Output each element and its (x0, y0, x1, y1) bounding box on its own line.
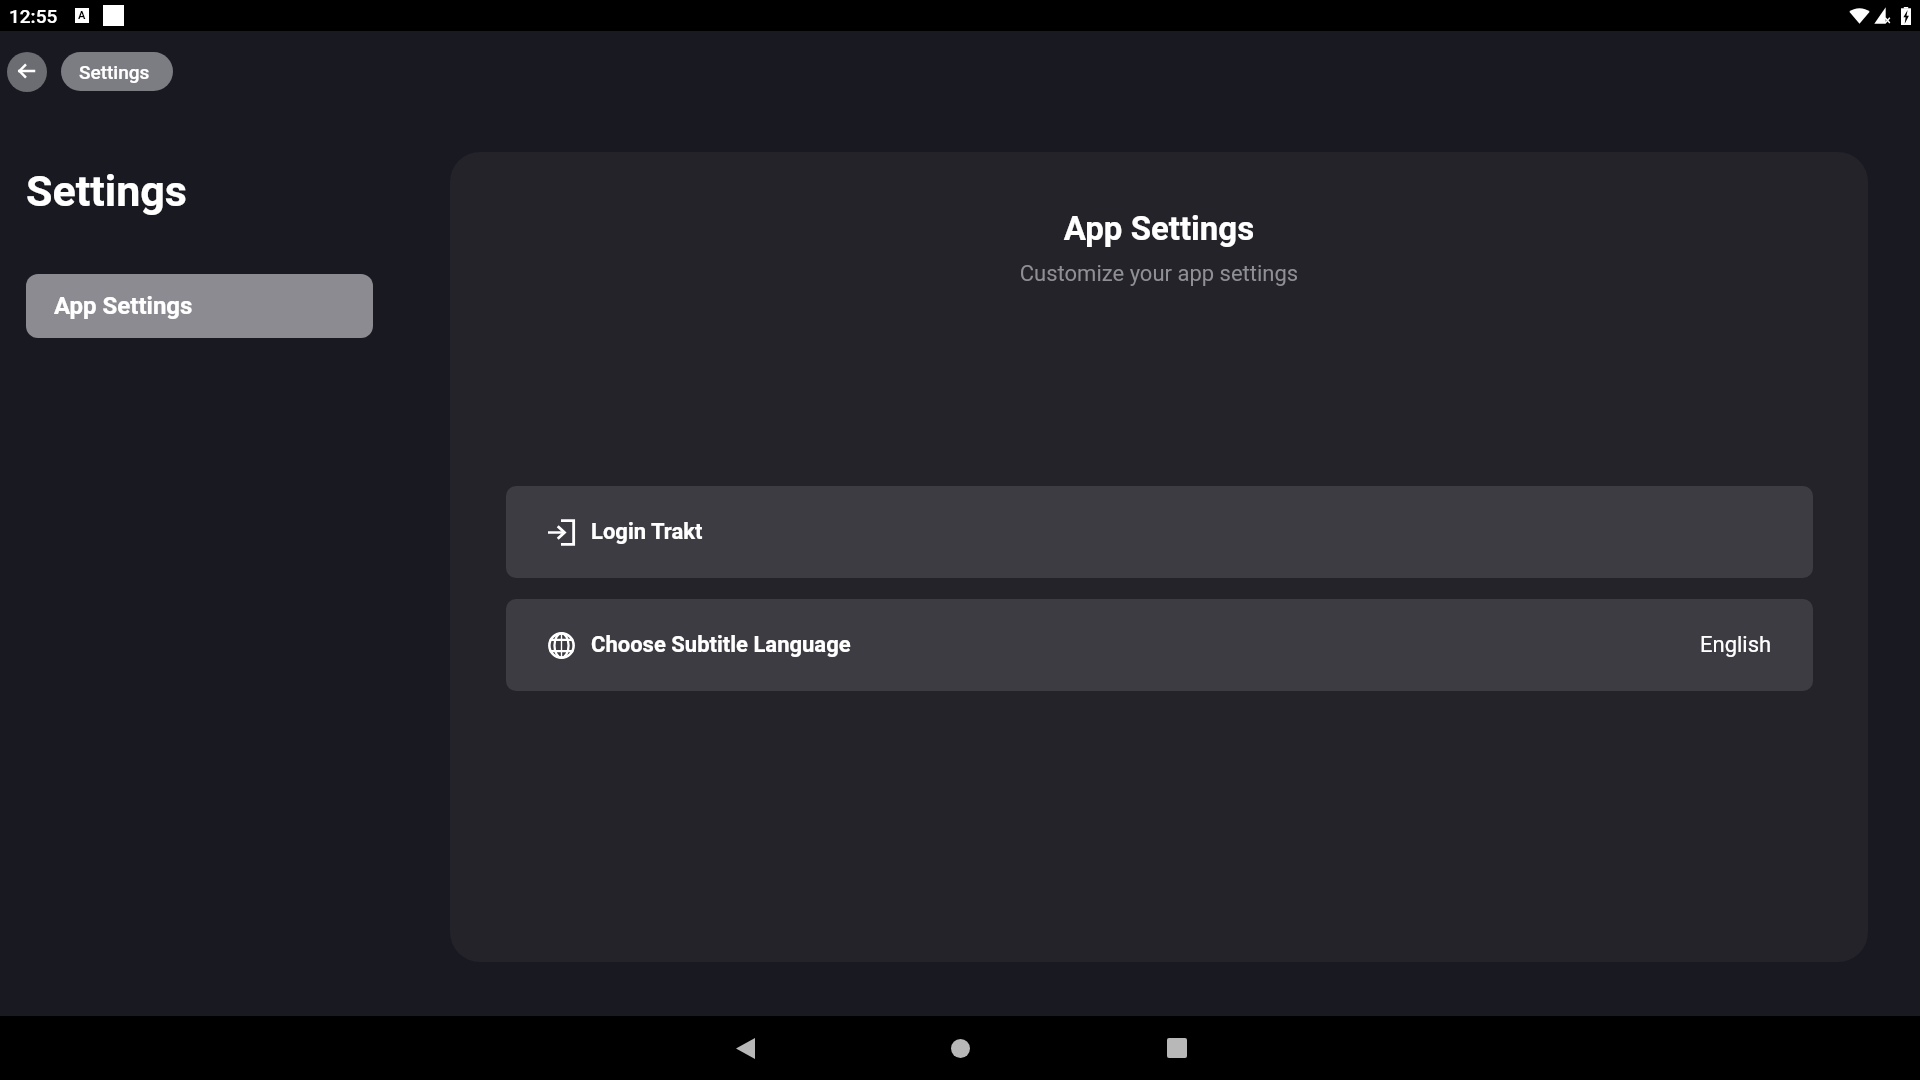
staticText: Login Trakt (591, 519, 703, 545)
staticText: Settings (79, 61, 150, 83)
button[interactable]: Back (721, 1016, 769, 1080)
staticText: App Settings (54, 292, 193, 320)
button[interactable]: Settings (61, 52, 173, 91)
staticText: App Settings (450, 209, 1868, 248)
button[interactable]: Choose Subtitle Language (506, 599, 1813, 691)
button[interactable]: App Settings (26, 274, 373, 338)
button[interactable]: Back (7, 52, 47, 92)
button[interactable]: Login Trakt (506, 486, 1813, 578)
staticText: English (1700, 632, 1772, 658)
staticText: A (78, 9, 86, 22)
staticText: Settings (26, 166, 187, 216)
button[interactable]: Home (936, 1016, 984, 1080)
staticText: 12:55 (9, 5, 58, 27)
staticText: Customize your app settings (450, 261, 1868, 287)
button[interactable]: Recents (1153, 1016, 1201, 1080)
staticText: Choose Subtitle Language (591, 632, 851, 658)
